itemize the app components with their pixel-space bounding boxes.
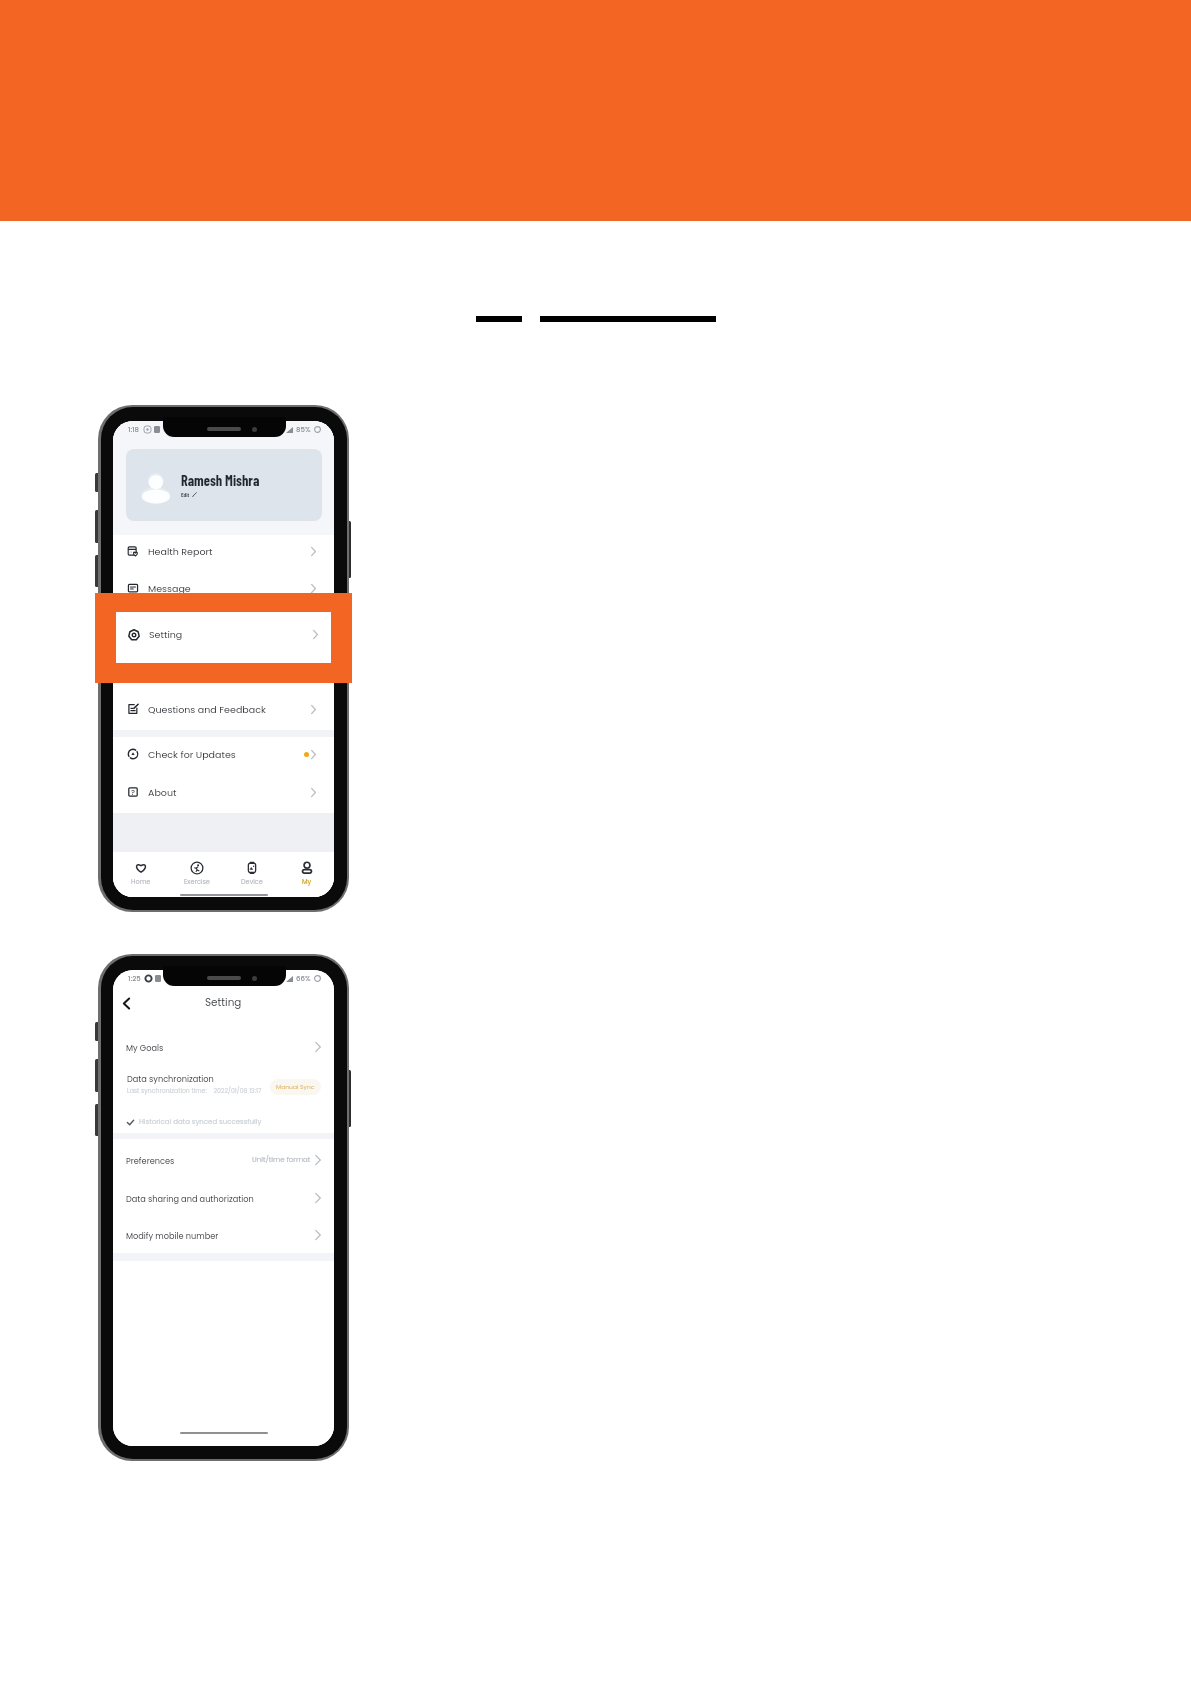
staticText: Unit/time format (252, 1155, 311, 1165)
button[interactable]: Manual Sync (270, 1079, 321, 1095)
button[interactable]: Data synchronization (113, 1063, 334, 1103)
staticText: My Goals (126, 1042, 164, 1053)
staticText: Preferences (126, 1155, 175, 1166)
staticText: ? (131, 787, 136, 797)
staticText: Setting (149, 628, 183, 641)
staticText: Questions and Feedback (148, 703, 266, 716)
staticText: Message (148, 582, 191, 595)
staticText: 66% (296, 974, 311, 984)
staticText: Last synchronization time: 2022/01/08 13… (127, 1086, 262, 1095)
staticText: Data synchronization (127, 1073, 214, 1084)
staticText: Home (131, 877, 151, 886)
staticText: My (302, 877, 312, 886)
staticText: Historical data synced successfully (139, 1117, 262, 1127)
button[interactable]: Data sharing and authorization (113, 1179, 334, 1217)
button[interactable]: My Goals (113, 1028, 334, 1066)
staticText: Device (241, 877, 263, 886)
staticText: Setting (205, 995, 242, 1010)
button[interactable]: Device (224, 857, 279, 890)
button[interactable]: My (279, 857, 334, 890)
staticText: 85% (296, 425, 311, 435)
staticText: Exercise (184, 877, 210, 886)
button[interactable]: ? (113, 773, 334, 811)
staticText: 1:25 (128, 974, 141, 984)
button[interactable]: Preferences (113, 1141, 334, 1179)
staticText: 1:18 (128, 425, 140, 435)
button[interactable]: Modify mobile number (113, 1216, 334, 1254)
staticText: Manual Sync (276, 1083, 315, 1091)
button[interactable]: Message (113, 569, 334, 607)
button[interactable]: Questions and Feedback (113, 690, 334, 728)
staticText: Modify mobile number (126, 1230, 219, 1241)
button[interactable]: Health Report (113, 532, 334, 570)
button[interactable]: Setting (116, 612, 331, 663)
staticText: Health Report (148, 545, 213, 558)
button[interactable]: Check for Updates (113, 735, 334, 773)
button[interactable]: Home (113, 857, 169, 890)
button[interactable]: Back (116, 993, 136, 1013)
button[interactable]: Exercise (169, 857, 224, 890)
button[interactable]: Ramesh Mishra (126, 449, 322, 521)
staticText: Ramesh Mishra (181, 472, 260, 489)
staticText: Edit (181, 491, 190, 498)
staticText: About (148, 786, 177, 799)
staticText: Data sharing and authorization (126, 1193, 254, 1204)
staticText: Check for Updates (148, 748, 236, 761)
